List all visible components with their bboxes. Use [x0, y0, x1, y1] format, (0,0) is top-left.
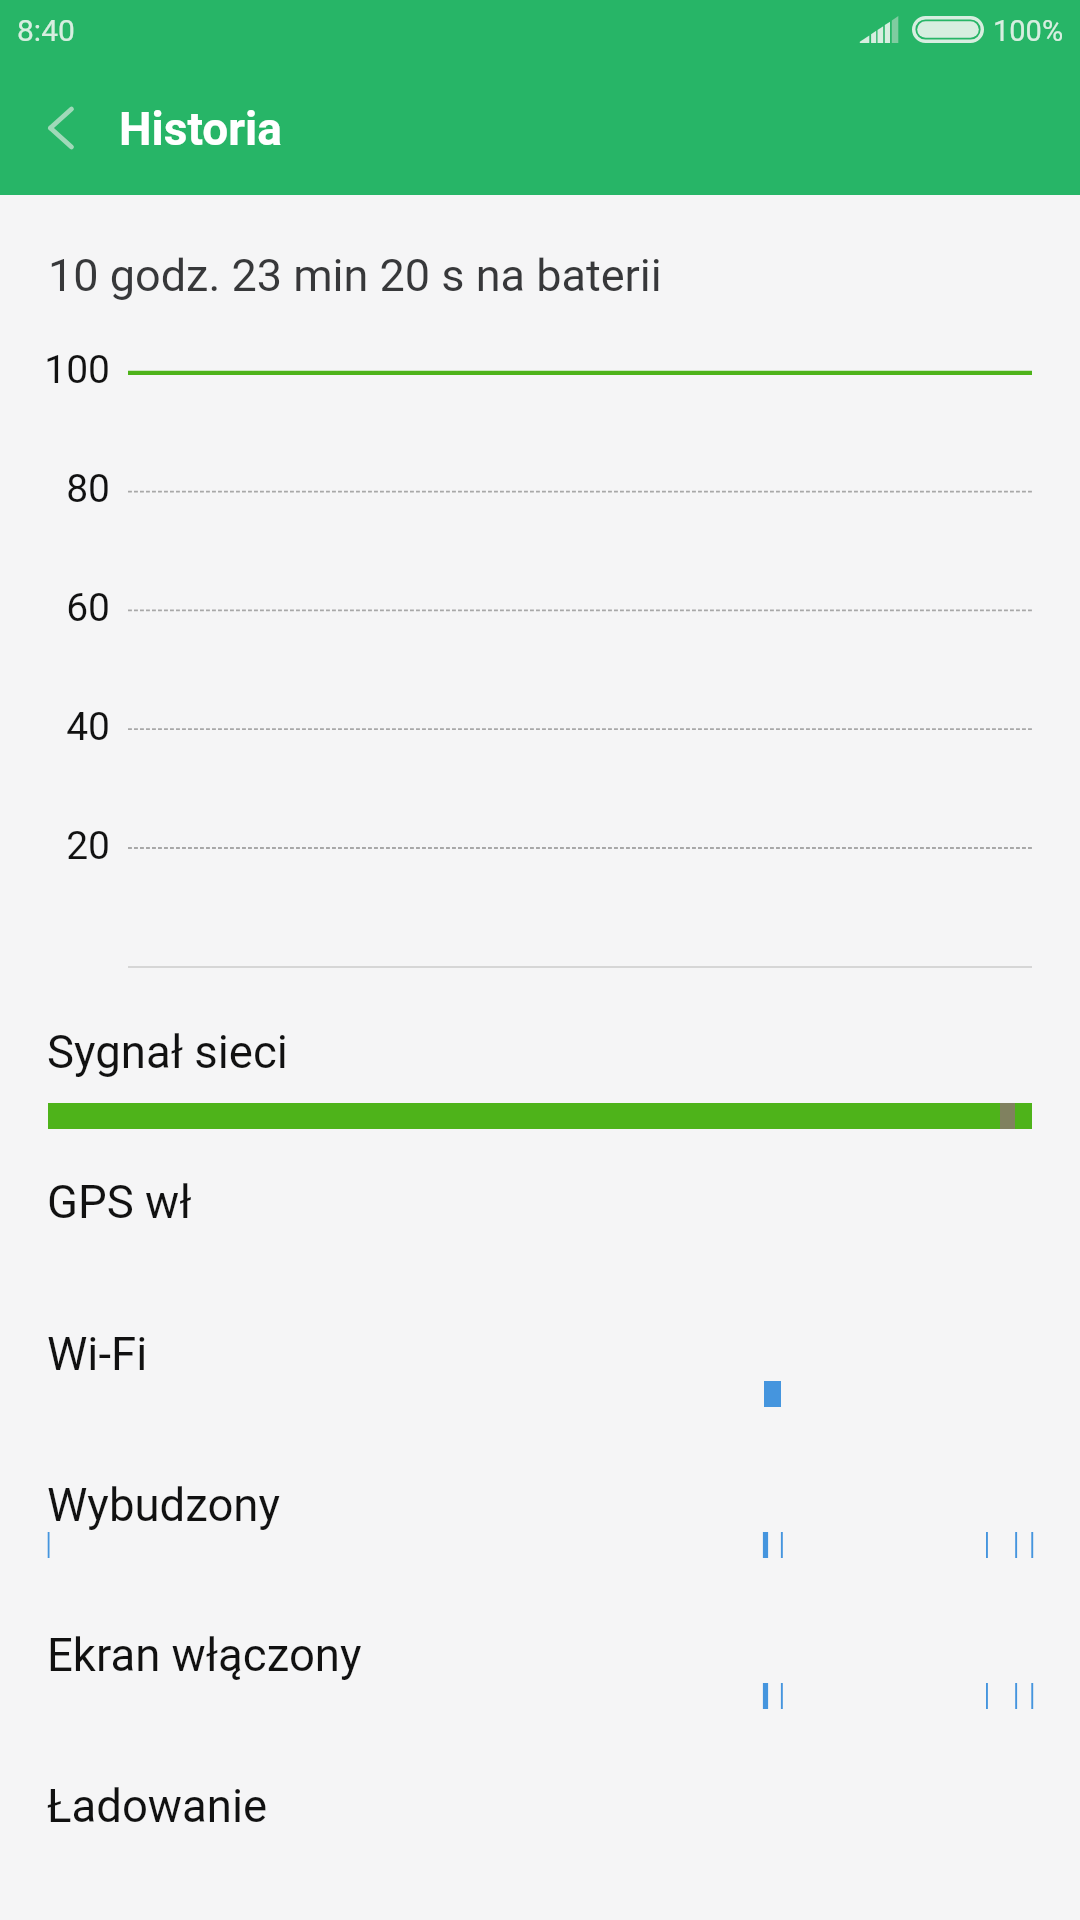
- staticText: 10 godz. 23 min 20 s na baterii: [48, 249, 662, 302]
- staticText: 8:40: [17, 13, 75, 48]
- staticText: 60: [0, 585, 110, 631]
- staticText: Sygnał sieci: [47, 1026, 288, 1079]
- button[interactable]: Back: [6, 73, 116, 183]
- other: Mobile signal strength: [859, 15, 899, 44]
- staticText: Ekran włączony: [47, 1629, 362, 1682]
- staticText: 40: [0, 704, 110, 750]
- staticText: 20: [0, 823, 110, 869]
- staticText: 80: [0, 466, 110, 512]
- staticText: Wi-Fi: [47, 1328, 148, 1381]
- staticText: 100: [0, 347, 110, 393]
- button[interactable]: Sygnał sieci: [0, 1010, 1080, 1155]
- button[interactable]: GPS wł: [0, 1160, 1080, 1305]
- staticText: 100%: [993, 14, 1064, 48]
- button[interactable]: Wybudzony: [0, 1463, 1080, 1608]
- staticText: Historia: [119, 102, 282, 156]
- button[interactable]: Ekran włączony: [0, 1613, 1080, 1758]
- staticText: Wybudzony: [47, 1479, 281, 1532]
- other: Battery full: [912, 16, 984, 43]
- button[interactable]: Ładowanie: [0, 1764, 1080, 1909]
- staticText: Ładowanie: [47, 1780, 268, 1833]
- staticText: GPS wł: [47, 1176, 192, 1229]
- button[interactable]: Wi-Fi: [0, 1312, 1080, 1457]
